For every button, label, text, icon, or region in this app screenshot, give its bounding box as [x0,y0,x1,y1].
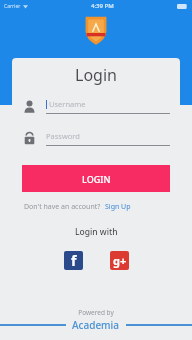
staticText: Academia [72,318,120,332]
button[interactable]: Login with Google Plus [110,251,129,270]
staticText: Password [46,131,80,141]
button[interactable]: Username [22,99,170,114]
staticText: LOGIN [82,173,111,185]
staticText: Don't have an account? [24,202,101,212]
button[interactable]: LOGIN [22,165,170,192]
staticText: f [71,251,77,270]
staticText: Login [75,64,117,86]
button[interactable]: Sign Up [105,202,131,212]
staticText: Carrier [4,3,21,10]
staticText: g+ [113,253,127,268]
staticText: Sign Up [105,202,131,212]
button[interactable]: Login with Facebook [64,251,83,270]
staticText: Username [49,99,86,109]
staticText: 4:39 PM [91,2,114,10]
button[interactable]: Password [22,131,170,146]
staticText: Login with [75,226,118,238]
staticText: Powered by [78,308,114,317]
